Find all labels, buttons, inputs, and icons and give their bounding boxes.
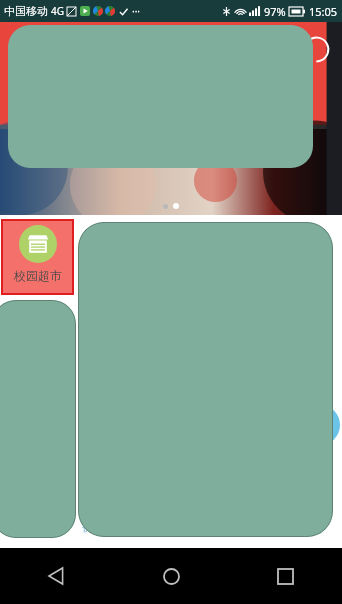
button[interactable]: Recents: [228, 548, 342, 604]
staticText: 15:05: [309, 4, 338, 19]
staticText: 4G: [51, 4, 64, 18]
staticText: 97%: [264, 4, 286, 19]
staticText: ···: [132, 4, 141, 18]
button[interactable]: Back: [0, 548, 114, 604]
staticText: 价格: [82, 521, 102, 534]
staticText: 中国移动: [4, 4, 48, 18]
button[interactable]: 校园超市: [1, 219, 74, 295]
button[interactable]: Home: [114, 548, 228, 604]
staticText: 校园超市: [14, 268, 62, 283]
